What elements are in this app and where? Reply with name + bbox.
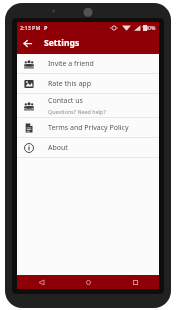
staticText: 2:13 PM: [20, 24, 41, 31]
button[interactable]: Back: [33, 275, 49, 289]
staticText: Terms and Privacy Policy: [48, 123, 129, 133]
staticText: Invite a friend: [48, 59, 94, 69]
staticText: About: [48, 143, 68, 153]
staticText: 100%: [142, 24, 156, 31]
staticText: P: [44, 24, 48, 31]
button[interactable]: Back: [17, 33, 37, 53]
button[interactable]: Invite a friend: [17, 54, 159, 73]
staticText: Settings: [44, 37, 80, 49]
button[interactable]: Rate this app: [17, 74, 159, 93]
button[interactable]: Contact us: [17, 94, 159, 117]
button[interactable]: Terms and Privacy Policy: [17, 118, 159, 137]
button[interactable]: About: [17, 138, 159, 157]
staticText: Rate this app: [48, 79, 91, 89]
staticText: Contact us: [48, 96, 83, 106]
button[interactable]: Home: [80, 275, 96, 289]
staticText: Questions? Need help?: [48, 108, 106, 115]
button[interactable]: Recents: [127, 275, 143, 289]
